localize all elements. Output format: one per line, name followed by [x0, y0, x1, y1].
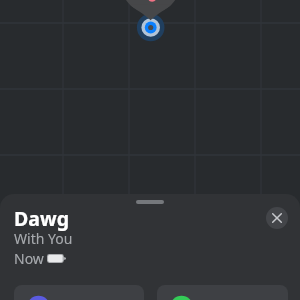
button[interactable]: Close — [266, 207, 288, 229]
staticText: With You — [14, 229, 73, 248]
staticText: Dawg — [14, 205, 69, 232]
button[interactable] — [14, 285, 144, 300]
button[interactable] — [157, 285, 288, 300]
staticText: Now — [14, 249, 44, 268]
